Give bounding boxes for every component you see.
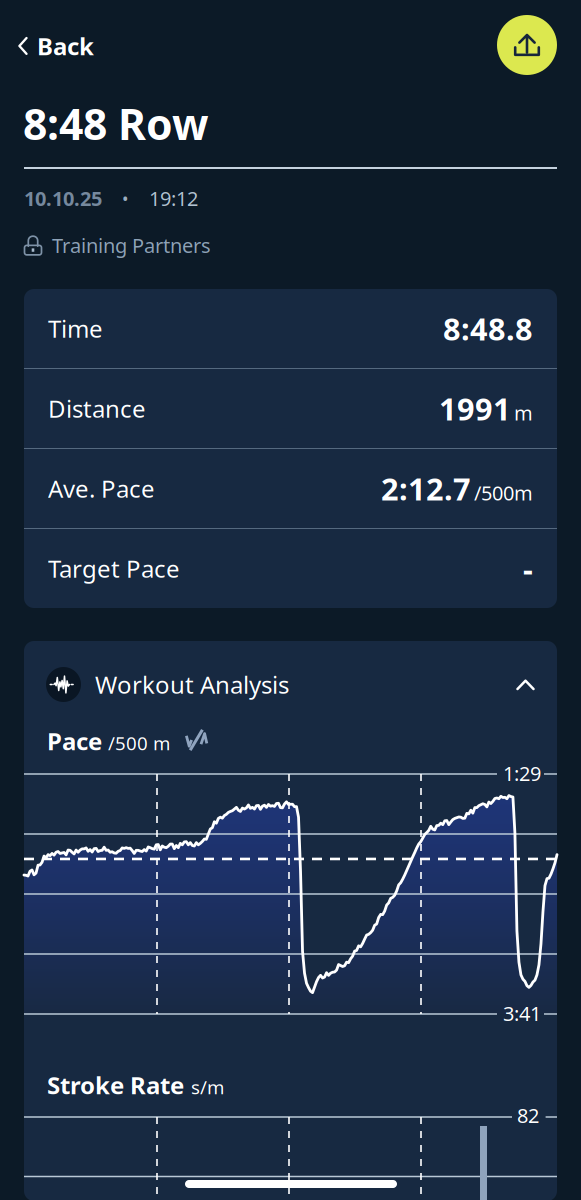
staticText: Back (37, 30, 94, 62)
staticText: /500m (474, 479, 533, 506)
staticText: 3:41 (503, 1000, 541, 1027)
button[interactable]: Workout Analysis (46, 667, 535, 702)
staticText: /500 m (108, 731, 170, 755)
staticText: m (514, 399, 533, 426)
staticText: Time (48, 313, 103, 344)
staticText: 1:29 (503, 760, 541, 787)
staticText: Distance (48, 393, 146, 424)
staticText: Pace (47, 725, 102, 757)
staticText: 19:12 (149, 185, 198, 212)
staticText: • (102, 187, 149, 210)
staticText: 82 (517, 1102, 539, 1129)
staticText: Ave. Pace (48, 473, 155, 504)
staticText: 8:48.8 (443, 308, 533, 349)
staticText: s/m (191, 1075, 224, 1099)
staticText: Workout Analysis (95, 669, 289, 700)
staticText: 10.10.25 (24, 185, 102, 212)
staticText: Target Pace (48, 553, 180, 584)
staticText: 1991 (439, 388, 511, 429)
staticText: 8:48 Row (23, 95, 209, 152)
staticText: - (523, 548, 533, 589)
staticText: Training Partners (52, 232, 211, 259)
staticText: 2:12.7 (381, 468, 471, 509)
button[interactable]: Share (497, 15, 557, 75)
staticText: Stroke Rate (47, 1069, 184, 1101)
button[interactable]: Back (7, 20, 104, 72)
